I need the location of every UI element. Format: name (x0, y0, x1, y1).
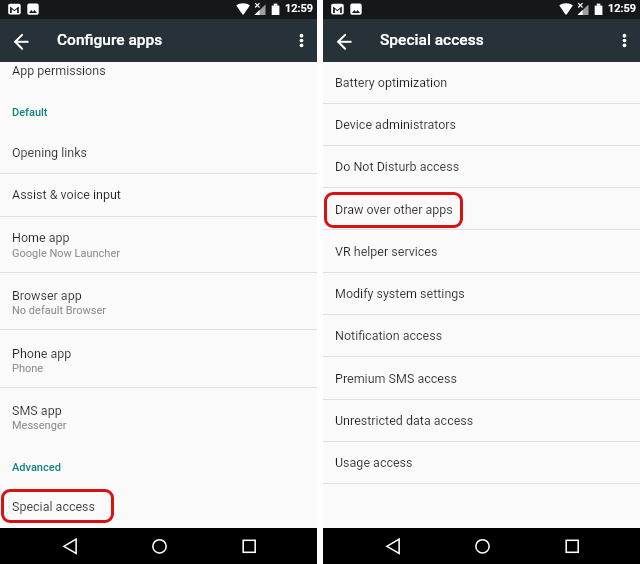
button[interactable]: SMS app (0, 388, 317, 444)
staticText: Phone app (12, 346, 72, 361)
staticText: Phone (12, 362, 44, 375)
button[interactable]: Notification access (323, 314, 640, 356)
staticText: Modify system settings (335, 286, 465, 301)
button[interactable]: Draw over other apps (323, 188, 640, 230)
staticText: Home app (12, 230, 70, 245)
staticText: App permissions (12, 63, 106, 78)
button[interactable]: Home app (0, 217, 317, 273)
button[interactable]: Browser app (0, 272, 317, 329)
button[interactable]: Device administrators (323, 103, 640, 145)
button[interactable]: Battery optimization (323, 61, 640, 103)
staticText: Opening links (12, 145, 87, 160)
button[interactable]: More options (281, 19, 317, 62)
button[interactable]: Usage access (323, 441, 640, 483)
staticText: Do Not Disturb access (335, 159, 460, 174)
staticText: Draw over other apps (335, 202, 453, 217)
staticText: Special access (12, 499, 96, 514)
staticText: No default Browser (12, 304, 107, 317)
staticText: Assist & voice input (12, 187, 121, 202)
staticText: Unrestricted data access (335, 413, 474, 428)
staticText: Browser app (12, 288, 82, 303)
button[interactable]: Special access (0, 487, 317, 528)
staticText: Google Now Launcher (12, 247, 120, 260)
staticText: Special access (380, 31, 484, 49)
staticText: Configure apps (57, 31, 163, 49)
staticText: VR helper services (335, 244, 438, 259)
staticText: Device administrators (335, 117, 457, 132)
button[interactable]: Do Not Disturb access (323, 145, 640, 187)
staticText: Battery optimization (335, 75, 448, 90)
staticText: Notification access (335, 328, 443, 343)
staticText: Messenger (12, 419, 67, 432)
button[interactable]: More options (604, 19, 640, 62)
button[interactable]: Back (323, 20, 365, 62)
staticText: Usage access (335, 455, 413, 470)
staticText: 12:59 (285, 2, 313, 15)
button[interactable]: Opening links (0, 128, 317, 174)
staticText: SMS app (12, 403, 62, 418)
button[interactable]: VR helper services (323, 230, 640, 272)
button[interactable]: Assist & voice input (0, 174, 317, 217)
button[interactable]: Back (0, 20, 42, 62)
staticText: 12:59 (608, 2, 636, 15)
button[interactable]: Modify system settings (323, 272, 640, 314)
button[interactable]: App permissions (0, 62, 317, 90)
staticText: Advanced (12, 461, 61, 474)
staticText: Default (12, 106, 48, 119)
button[interactable]: Phone app (0, 329, 317, 388)
button[interactable]: Premium SMS access (323, 357, 640, 399)
button[interactable]: Unrestricted data access (323, 399, 640, 441)
staticText: Premium SMS access (335, 371, 457, 386)
